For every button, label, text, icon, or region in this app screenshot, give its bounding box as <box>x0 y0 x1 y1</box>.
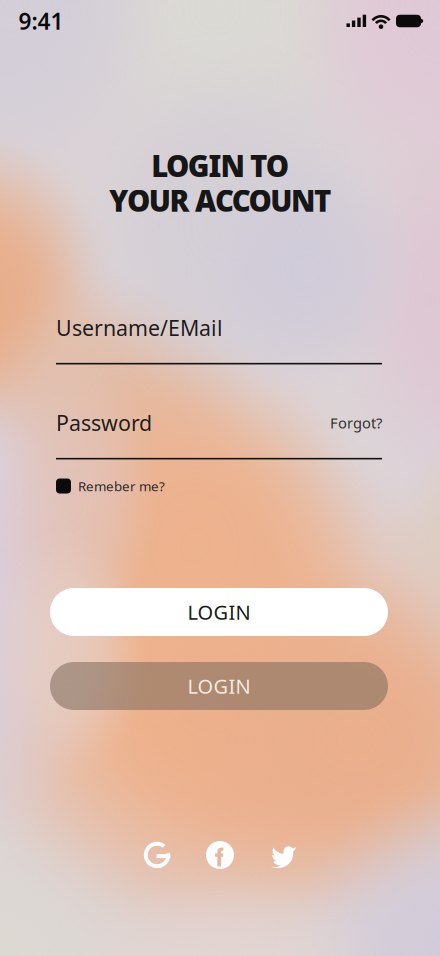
staticText: LOGIN <box>187 673 250 699</box>
button[interactable]: Remeber me? <box>56 477 382 495</box>
staticText: Username/EMail <box>56 313 223 342</box>
button[interactable]: LOGIN <box>50 662 388 710</box>
staticText: YOUR ACCOUNT <box>109 181 331 220</box>
button[interactable]: Sign in with Google <box>143 840 171 869</box>
button[interactable]: Forgot? <box>330 413 382 432</box>
staticText: Forgot? <box>330 413 382 432</box>
button[interactable]: LOGIN <box>50 588 388 636</box>
button[interactable]: Sign in with Facebook <box>206 841 234 869</box>
button[interactable]: Sign in with Twitter <box>269 841 297 869</box>
staticText: 9:41 <box>18 6 63 36</box>
staticText: Password <box>56 408 152 437</box>
staticText: Remeber me? <box>78 477 165 495</box>
staticText: LOGIN <box>187 599 250 625</box>
staticText: LOGIN TO <box>151 146 289 185</box>
